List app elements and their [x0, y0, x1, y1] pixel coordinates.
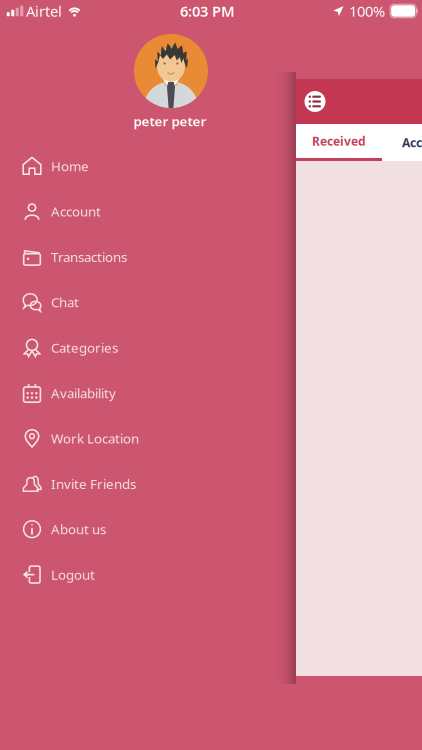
- staticText: 100%: [349, 1, 385, 21]
- staticText: Invite Friends: [51, 475, 136, 493]
- staticText: Logout: [51, 566, 95, 583]
- staticText: Home: [51, 157, 89, 175]
- button[interactable]: Home: [0, 143, 296, 189]
- staticText: Categories: [51, 339, 118, 356]
- button[interactable]: Availability: [0, 370, 296, 416]
- staticText: Airtel: [26, 1, 62, 21]
- staticText: About us: [51, 520, 106, 538]
- staticText: Availability: [51, 384, 116, 402]
- button[interactable]: Received: [296, 124, 382, 161]
- staticText: Work Location: [51, 429, 139, 447]
- button[interactable]: Invite Friends: [0, 461, 296, 506]
- staticText: peter peter: [133, 112, 206, 130]
- staticText: Transactions: [51, 248, 127, 266]
- button[interactable]: Logout: [0, 552, 296, 597]
- staticText: Account: [51, 202, 101, 220]
- button[interactable]: Account: [0, 189, 296, 234]
- staticText: 6:03 PM: [180, 1, 235, 21]
- button[interactable]: Work Location: [0, 416, 296, 461]
- button[interactable]: Chat: [0, 279, 296, 325]
- button[interactable]: Menu: [297, 79, 333, 124]
- button[interactable]: About us: [0, 506, 296, 552]
- button[interactable]: Transactions: [0, 234, 296, 279]
- button[interactable]: Accepted: [382, 124, 422, 161]
- staticText: Chat: [51, 293, 79, 311]
- button[interactable]: Categories: [0, 325, 296, 370]
- staticText: Received: [312, 133, 366, 149]
- staticText: Accepted: [402, 134, 422, 150]
